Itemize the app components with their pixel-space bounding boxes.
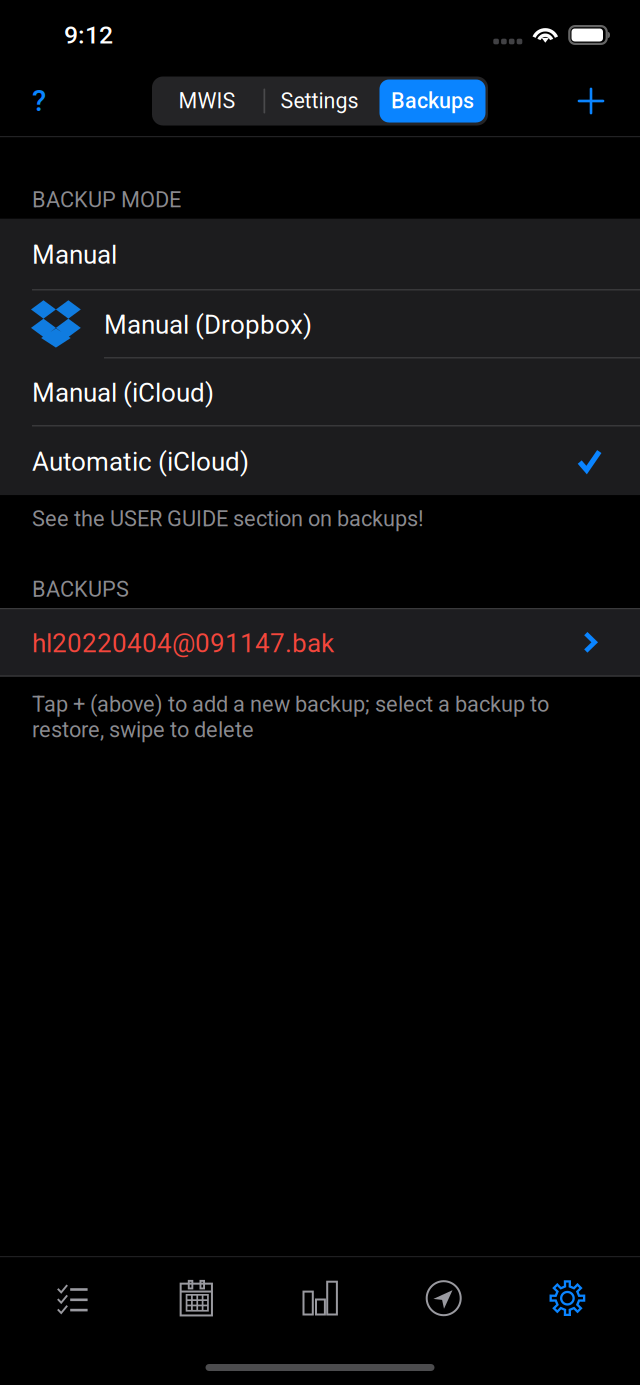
staticText: MWIS bbox=[178, 88, 235, 114]
staticText: Tap + (above) to add a new backup; selec… bbox=[32, 692, 549, 742]
button[interactable]: Statistics bbox=[258, 1262, 382, 1334]
button[interactable]: Automatic (iCloud) bbox=[0, 426, 640, 495]
button[interactable]: Manual (Dropbox) bbox=[0, 290, 640, 357]
staticText: Settings bbox=[280, 88, 358, 114]
staticText: Automatic (iCloud) bbox=[32, 446, 249, 477]
button[interactable]: Add backup bbox=[561, 71, 621, 131]
button[interactable]: Navigation bbox=[382, 1262, 506, 1334]
staticText: Backups bbox=[391, 88, 474, 114]
button[interactable]: Tasks bbox=[11, 1262, 134, 1334]
button[interactable]: Settings bbox=[506, 1262, 629, 1334]
staticText: BACKUP MODE bbox=[32, 187, 181, 213]
button[interactable]: Calendar bbox=[134, 1262, 258, 1334]
staticText: Manual bbox=[32, 240, 117, 270]
button[interactable]: MWIS bbox=[154, 79, 259, 122]
button[interactable]: Manual (iCloud) bbox=[0, 358, 640, 425]
staticText: 9:12 bbox=[64, 20, 113, 50]
staticText: BACKUPS bbox=[32, 576, 129, 602]
button[interactable]: hl20220404@091147.bak bbox=[0, 608, 640, 677]
staticText: Manual (iCloud) bbox=[32, 377, 214, 408]
staticText: hl20220404@091147.bak bbox=[32, 628, 334, 659]
button[interactable]: Backups bbox=[379, 79, 485, 122]
button[interactable]: Settings bbox=[259, 79, 379, 122]
button[interactable]: Help bbox=[9, 67, 69, 135]
staticText: Manual (Dropbox) bbox=[104, 309, 312, 340]
staticText: See the USER GUIDE section on backups! bbox=[32, 506, 424, 532]
button[interactable]: Manual bbox=[0, 219, 640, 289]
staticText: ? bbox=[32, 84, 46, 118]
